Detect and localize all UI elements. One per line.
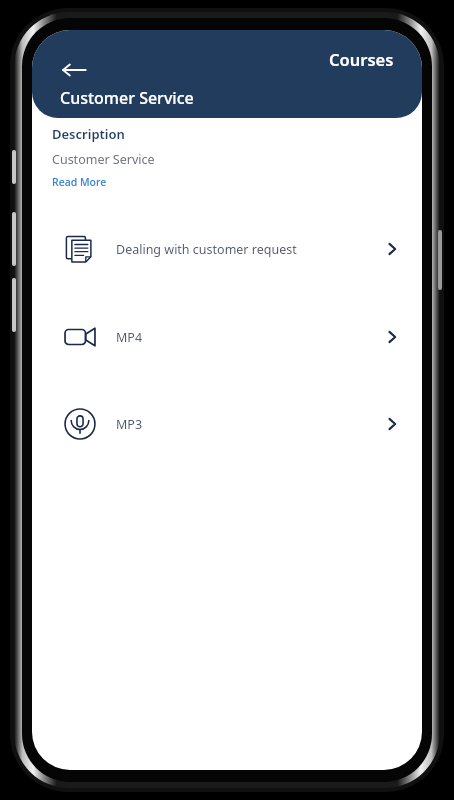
button[interactable]: MP3 bbox=[32, 395, 422, 453]
button[interactable]: Back bbox=[50, 46, 98, 94]
button[interactable]: Courses bbox=[323, 42, 400, 76]
staticText: Courses bbox=[329, 48, 394, 70]
staticText: MP4 bbox=[116, 329, 143, 346]
staticText: Customer Service bbox=[52, 151, 155, 168]
staticText: MP3 bbox=[116, 416, 143, 433]
button[interactable]: MP4 bbox=[32, 308, 422, 366]
staticText: Read More bbox=[52, 175, 107, 189]
staticText: Dealing with customer request bbox=[116, 241, 297, 258]
button[interactable]: Read More bbox=[52, 175, 107, 189]
staticText: Customer Service bbox=[60, 87, 194, 109]
button[interactable]: Dealing with customer request bbox=[32, 220, 422, 278]
staticText: Description bbox=[52, 125, 125, 143]
